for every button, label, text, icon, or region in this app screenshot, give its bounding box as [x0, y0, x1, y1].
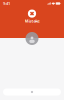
staticText: Mistake — [24, 18, 39, 24]
staticText: 9:41 — [3, 1, 10, 6]
button[interactable]: Continue — [3, 88, 61, 95]
